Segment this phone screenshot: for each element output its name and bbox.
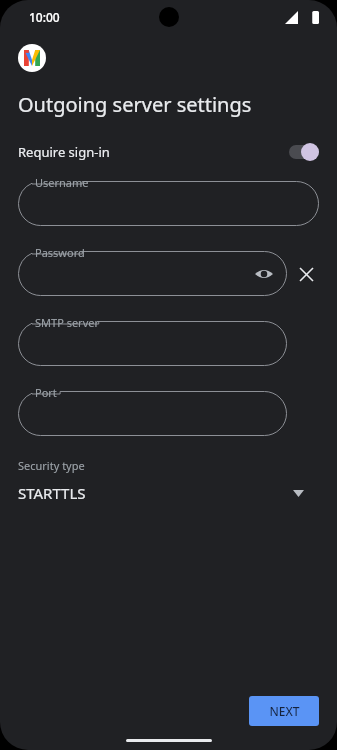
- staticText: 10:00: [29, 9, 60, 25]
- staticText: Username: [35, 175, 89, 190]
- staticText: Require sign-in: [18, 143, 110, 161]
- button[interactable]: Username: [18, 181, 319, 226]
- button[interactable]: Port: [18, 391, 287, 436]
- staticText: STARTTLS: [18, 483, 86, 503]
- button[interactable]: Require sign-in: [18, 137, 319, 167]
- button[interactable]: Show password: [253, 263, 275, 285]
- staticText: Password: [35, 245, 85, 260]
- staticText: Port: [35, 385, 57, 400]
- staticText: Security type: [18, 458, 85, 473]
- staticText: NEXT: [269, 703, 300, 719]
- button[interactable]: NEXT: [249, 696, 319, 726]
- button[interactable]: Password: [18, 251, 287, 296]
- button[interactable]: SMTP server: [18, 321, 287, 366]
- staticText: SMTP server: [35, 315, 99, 330]
- button[interactable]: Clear password: [293, 261, 319, 287]
- button[interactable]: Security type: [18, 458, 319, 503]
- staticText: Outgoing server settings: [18, 91, 252, 118]
